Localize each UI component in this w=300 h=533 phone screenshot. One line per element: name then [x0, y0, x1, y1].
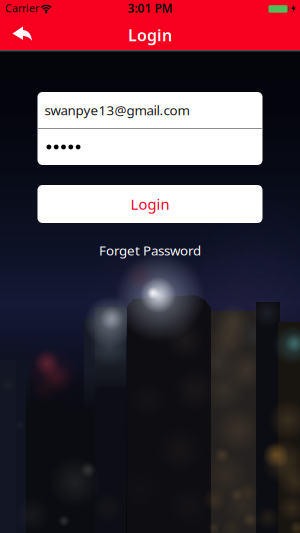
button[interactable]: Forget Password [99, 241, 201, 259]
button[interactable]: Back [0, 20, 44, 50]
staticText: Carrier [5, 1, 39, 15]
button[interactable]: Login [37, 185, 262, 223]
staticText: Login [130, 194, 169, 214]
staticText: Login [128, 24, 172, 46]
staticText: swanpye13@gmail.com [44, 101, 189, 119]
staticText: 3:01 PM [127, 0, 172, 16]
staticText: Forget Password [99, 241, 201, 259]
